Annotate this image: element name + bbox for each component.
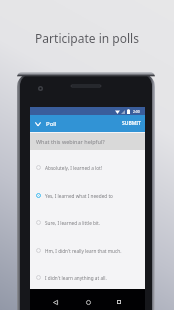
staticText: Poll <box>46 120 57 128</box>
staticText: Hm, I didn't really learn that much. <box>45 248 122 254</box>
button[interactable]: Back <box>47 294 63 310</box>
other: Collapse poll <box>35 121 41 127</box>
button[interactable]: Collapse poll <box>30 115 145 132</box>
staticText: I didn't learn anything at all. <box>45 275 107 281</box>
staticText: What this webinar helpful? <box>36 138 105 145</box>
button[interactable]: Sure, I learned a little bit. <box>30 209 145 236</box>
staticText: Sure, I learned a little bit. <box>45 220 101 226</box>
button[interactable]: Hm, I didn't really learn that much. <box>30 237 145 264</box>
staticText: Participate in polls <box>0 30 174 46</box>
button[interactable]: Absolutely, I learned a lot! <box>30 154 145 181</box>
staticText: 2:00 <box>133 109 140 114</box>
button[interactable]: I didn't learn anything at all. <box>30 264 145 291</box>
staticText: SUBMIT <box>122 120 141 127</box>
staticText: Absolutely, I learned a lot! <box>45 165 103 171</box>
button[interactable]: Yes, I learned what I needed to <box>30 182 145 209</box>
button[interactable]: Recent apps <box>111 294 127 310</box>
button[interactable]: Home <box>80 294 96 310</box>
staticText: Yes, I learned what I needed to <box>45 193 113 199</box>
